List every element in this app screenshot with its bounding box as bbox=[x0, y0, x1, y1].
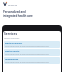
button[interactable]: Digital Pharmacy bbox=[4, 41, 60, 48]
staticText: health services bbox=[4, 37, 20, 40]
staticText: Telemedicine bbox=[5, 58, 19, 61]
staticText: VITALIS bbox=[8, 3, 18, 6]
staticText: Lorem ipsum dolor sit amet consectetur a… bbox=[5, 45, 49, 47]
button[interactable]: Telemedicine bbox=[4, 57, 60, 64]
staticText: Personalized and bbox=[3, 10, 26, 14]
staticText: Mental Health bbox=[5, 50, 20, 53]
staticText: Lorem ipsum dolor sit amet consectetur a… bbox=[5, 53, 49, 55]
staticText: Digital Pharmacy bbox=[5, 42, 23, 45]
staticText: Lorem ipsum dolor sit amet consectetur a… bbox=[5, 61, 49, 63]
button[interactable]: Mental Health bbox=[4, 49, 60, 56]
button[interactable]: Logo bbox=[3, 2, 7, 6]
staticText: integrated health care bbox=[3, 14, 33, 18]
staticText: Services bbox=[4, 32, 18, 36]
